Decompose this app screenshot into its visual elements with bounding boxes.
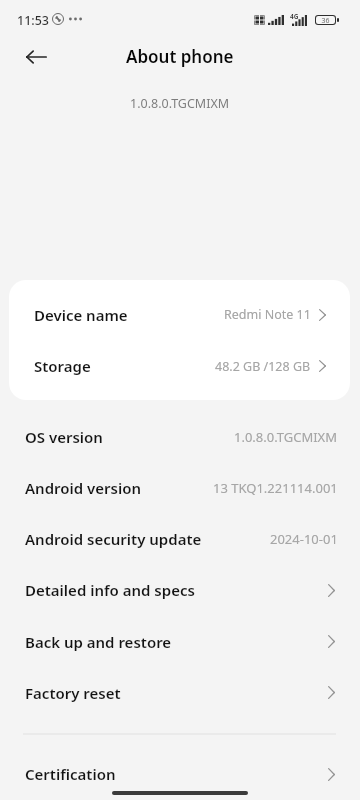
- staticText: 11:53: [17, 12, 50, 29]
- button[interactable]: Back: [23, 44, 49, 70]
- staticText: About phone: [126, 45, 234, 68]
- button[interactable]: Certification: [0, 750, 360, 798]
- staticText: Redmi Note 11: [224, 306, 311, 323]
- staticText: Android version: [25, 478, 141, 498]
- staticText: 1.0.8.0.TGCMIXM: [130, 95, 230, 112]
- staticText: Certification: [25, 764, 116, 784]
- staticText: 13 TKQ1.221114.001: [213, 479, 338, 497]
- button[interactable]: Detailed info and specs: [0, 564, 360, 616]
- button[interactable]: Android version: [0, 462, 360, 513]
- button[interactable]: Back up and restore: [0, 616, 360, 667]
- staticText: 48.2 GB /128 GB: [215, 358, 311, 375]
- staticText: Factory reset: [25, 683, 121, 703]
- button[interactable]: Factory reset: [0, 667, 360, 718]
- staticText: OS version: [25, 427, 103, 447]
- button[interactable]: Storage: [9, 340, 350, 392]
- staticText: 1.0.8.0.TGCMIXM: [234, 428, 338, 446]
- button[interactable]: Android security update: [0, 513, 360, 564]
- staticText: Android security update: [25, 529, 202, 549]
- staticText: Device name: [34, 305, 128, 325]
- button[interactable]: OS version: [0, 411, 360, 462]
- button[interactable]: Device name: [9, 289, 350, 340]
- staticText: 36: [321, 16, 330, 24]
- staticText: Back up and restore: [25, 632, 172, 652]
- staticText: 4G: [290, 12, 299, 21]
- staticText: Detailed info and specs: [25, 580, 195, 600]
- staticText: 2024-10-01: [270, 530, 338, 548]
- staticText: Storage: [34, 356, 91, 376]
